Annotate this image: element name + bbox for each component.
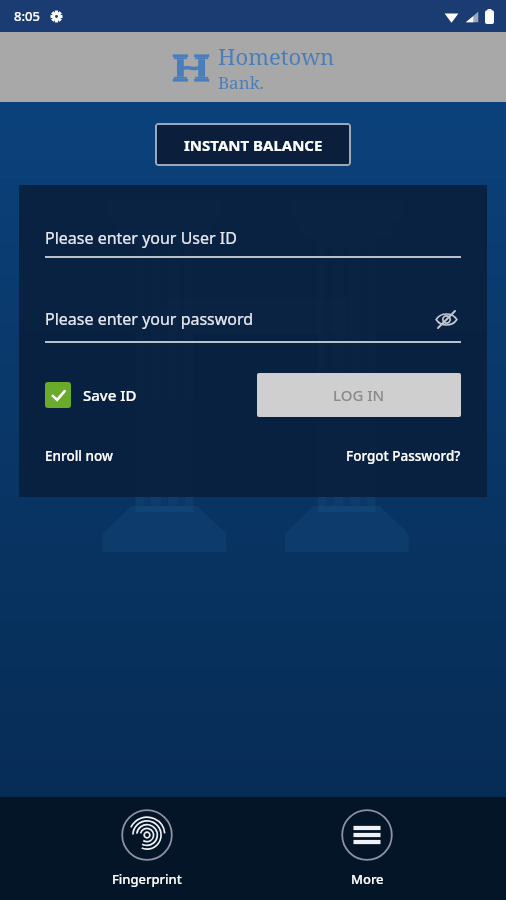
button[interactable]: INSTANT BALANCE — [155, 123, 351, 166]
staticText: Fingerprint — [112, 870, 182, 888]
staticText: Please enter your password — [45, 308, 254, 330]
button[interactable]: Save ID — [45, 382, 137, 408]
staticText: Forgot Password? — [346, 447, 461, 465]
button[interactable]: Fingerprint — [106, 803, 188, 894]
button[interactable]: Show password — [431, 304, 461, 334]
staticText: Please enter your User ID — [45, 227, 237, 249]
staticText: Bank. — [218, 71, 264, 94]
button[interactable]: Forgot Password? — [346, 447, 461, 465]
staticText: Save ID — [83, 385, 137, 405]
button[interactable]: Enroll now — [45, 447, 113, 465]
staticText: 8:05 — [14, 7, 40, 25]
staticText: Hometown — [218, 41, 335, 71]
button[interactable]: LOG IN — [257, 373, 461, 417]
staticText: INSTANT BALANCE — [184, 135, 323, 155]
staticText: Enroll now — [45, 447, 113, 465]
staticText: More — [351, 870, 384, 888]
staticText: LOG IN — [333, 385, 385, 405]
button[interactable]: More — [335, 803, 399, 894]
